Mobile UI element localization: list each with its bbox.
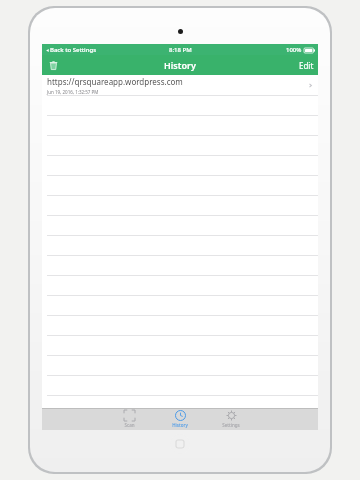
button[interactable]: https://qrsquareapp.wordpress.com bbox=[42, 75, 318, 96]
staticText: Settings bbox=[222, 422, 240, 428]
button[interactable]: Delete history bbox=[45, 57, 61, 73]
staticText: 100% bbox=[286, 46, 302, 54]
button[interactable]: Settings bbox=[214, 408, 248, 430]
staticText: Scan bbox=[124, 422, 135, 428]
button[interactable]: History bbox=[163, 408, 197, 430]
staticText: Edit bbox=[299, 60, 314, 71]
staticText: History bbox=[172, 422, 188, 428]
button[interactable]: Back to Settings bbox=[45, 46, 97, 54]
button[interactable]: Edit bbox=[299, 60, 314, 71]
staticText: Back to Settings bbox=[50, 46, 97, 54]
staticText: 8:18 PM bbox=[169, 46, 192, 54]
staticText: https://qrsquareapp.wordpress.com bbox=[47, 76, 183, 87]
staticText: History bbox=[164, 59, 196, 71]
staticText: Jun 19, 2016, 1:32:57 PM bbox=[47, 89, 99, 95]
button[interactable]: Scan bbox=[112, 408, 146, 430]
